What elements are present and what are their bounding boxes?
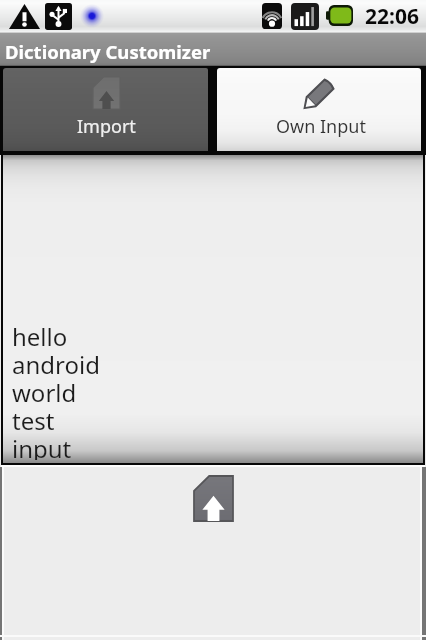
staticText: world xyxy=(12,376,77,404)
staticText: Own Input xyxy=(276,114,366,139)
button[interactable]: Own Input xyxy=(217,68,421,151)
staticText: input xyxy=(12,432,72,460)
staticText: 22:06 xyxy=(365,2,419,31)
staticText: hello xyxy=(12,320,68,348)
staticText: test xyxy=(12,404,55,432)
staticText: Dictionary Customizer xyxy=(5,39,211,64)
staticText: android xyxy=(12,348,100,376)
button[interactable]: Import file xyxy=(194,476,233,521)
button[interactable]: Import xyxy=(3,68,208,151)
staticText: Import xyxy=(77,114,136,139)
